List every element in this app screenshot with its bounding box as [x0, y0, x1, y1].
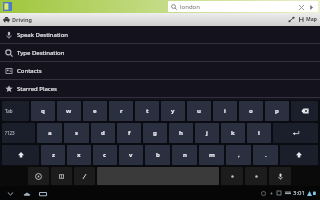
staticText: n — [183, 151, 187, 159]
button[interactable]: Contacts — [0, 62, 320, 80]
button[interactable]: q — [31, 101, 55, 121]
staticText: p — [275, 107, 279, 115]
button[interactable]: z — [41, 145, 65, 165]
button[interactable]: i — [213, 101, 237, 121]
button[interactable]: Home — [20, 187, 33, 200]
button[interactable]: k — [221, 123, 245, 143]
button[interactable]: d — [91, 123, 115, 143]
button[interactable]: . — [253, 145, 278, 165]
button[interactable]: m — [199, 145, 224, 165]
button[interactable]: Backspace — [291, 101, 318, 121]
staticText: ?123 — [5, 130, 15, 136]
staticText: w — [66, 107, 72, 115]
staticText: b — [156, 151, 160, 159]
button[interactable]: g — [143, 123, 167, 143]
button[interactable]: o — [239, 101, 263, 121]
staticText: Starred Places — [17, 85, 57, 93]
button[interactable]: l — [247, 123, 271, 143]
staticText: 3:01 — [293, 189, 305, 197]
staticText: Type Destination — [17, 49, 65, 57]
button[interactable]: Enter — [273, 123, 318, 143]
button[interactable]: h — [169, 123, 193, 143]
button[interactable]: Type Destination — [0, 44, 320, 62]
button[interactable]: Map — [298, 14, 317, 25]
button[interactable]: w — [57, 101, 81, 121]
staticText: q — [41, 107, 45, 115]
staticText: m — [209, 151, 215, 159]
button[interactable]: c — [93, 145, 117, 165]
staticText: u — [197, 107, 201, 115]
button[interactable]: Next — [245, 167, 267, 185]
staticText: x — [77, 151, 81, 159]
button[interactable]: Clear — [296, 2, 306, 12]
button[interactable]: s — [64, 123, 89, 143]
button[interactable]: Tab — [2, 101, 29, 121]
button[interactable]: j — [195, 123, 219, 143]
staticText: london — [180, 3, 296, 11]
button[interactable]: Slash — [74, 167, 95, 185]
button[interactable]: t — [135, 101, 159, 121]
staticText: d — [101, 129, 105, 137]
staticText: k — [231, 129, 235, 137]
button[interactable]: n — [172, 145, 197, 165]
staticText: y — [171, 107, 175, 115]
button[interactable]: Emoji — [51, 167, 72, 185]
staticText: Driving — [12, 16, 32, 23]
button[interactable]: r — [109, 101, 133, 121]
button[interactable]: y — [161, 101, 185, 121]
staticText: e — [93, 107, 97, 115]
staticText: j — [206, 129, 208, 137]
staticText: . — [265, 151, 267, 159]
button[interactable]: Back — [4, 187, 17, 200]
staticText: f — [128, 129, 131, 137]
staticText: r — [120, 107, 123, 115]
button[interactable]: Search — [306, 2, 316, 12]
staticText: Tab — [5, 108, 13, 114]
staticText: g — [153, 129, 157, 137]
staticText: a — [48, 129, 52, 137]
button[interactable]: u — [187, 101, 211, 121]
button[interactable]: , — [226, 145, 251, 165]
button[interactable]: ?123 — [2, 123, 35, 143]
staticText: z — [52, 151, 55, 159]
button[interactable]: e — [83, 101, 107, 121]
staticText: h — [179, 129, 183, 137]
staticText: v — [129, 151, 133, 159]
button[interactable]: Starred Places — [0, 80, 320, 98]
staticText: Map — [306, 16, 317, 23]
staticText: o — [249, 107, 253, 115]
button[interactable]: b — [145, 145, 170, 165]
staticText: Speak Destination — [17, 31, 68, 39]
button[interactable]: Shift — [2, 145, 39, 165]
button[interactable]: Recent apps — [36, 187, 49, 200]
staticText: , — [238, 151, 240, 159]
button[interactable]: Navigation app — [2, 1, 13, 12]
button[interactable]: Driving — [3, 14, 32, 25]
button[interactable]: x — [67, 145, 91, 165]
button[interactable]: a — [37, 123, 62, 143]
staticText: t — [146, 107, 149, 115]
button[interactable]: Shift — [280, 145, 318, 165]
staticText: i — [224, 107, 226, 115]
button[interactable]: Speak Destination — [0, 26, 320, 44]
button[interactable]: 3:01 — [261, 189, 320, 197]
button[interactable]: london — [168, 1, 318, 12]
button[interactable]: Previous — [221, 167, 243, 185]
staticText: s — [75, 129, 79, 137]
staticText: c — [103, 151, 107, 159]
button[interactable]: v — [119, 145, 143, 165]
button[interactable]: Settings — [28, 167, 49, 185]
button[interactable]: Voice input — [269, 167, 291, 185]
staticText: l — [258, 129, 260, 137]
button[interactable]: f — [117, 123, 141, 143]
button[interactable]: p — [265, 101, 289, 121]
button[interactable]: Route options — [285, 13, 298, 26]
staticText: Contacts — [17, 67, 42, 75]
